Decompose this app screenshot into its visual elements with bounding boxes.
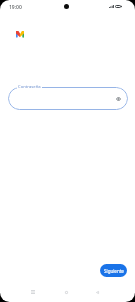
button[interactable]: Back [89,284,105,300]
button[interactable]: Recents [25,284,41,300]
staticText: 19:00 [9,4,22,11]
button[interactable]: Home [58,284,74,300]
staticText: Contraseña [18,84,41,90]
staticText: Siguiente [104,268,124,274]
button[interactable]: Show password [8,87,128,110]
button[interactable]: Siguiente [100,264,127,277]
other: Show password [115,96,121,102]
